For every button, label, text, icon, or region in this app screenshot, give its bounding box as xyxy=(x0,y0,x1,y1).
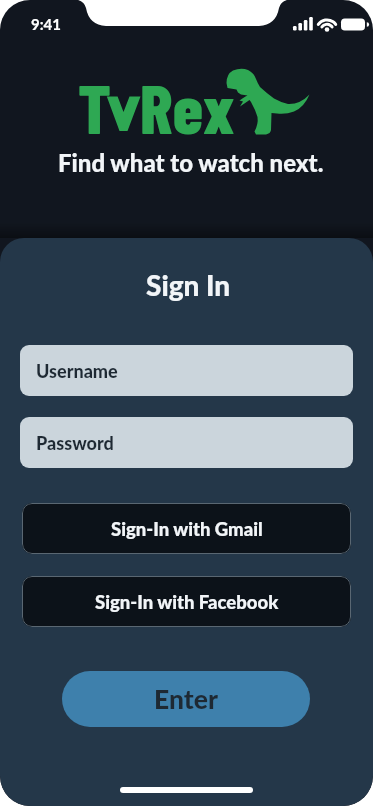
staticText: Sign In xyxy=(146,268,231,302)
button[interactable]: Sign-In with Facebook xyxy=(22,576,351,627)
staticText: Find what to watch next. xyxy=(58,148,324,176)
staticText: Rex xyxy=(140,66,235,148)
button[interactable]: Password xyxy=(20,417,353,468)
staticText: Sign-In with Facebook xyxy=(95,591,279,613)
staticText: Enter xyxy=(154,683,218,715)
button[interactable]: Enter xyxy=(62,671,310,727)
button[interactable]: Username xyxy=(20,345,353,396)
staticText: Sign-In with Gmail xyxy=(111,518,263,540)
staticText: T xyxy=(78,66,111,148)
staticText: Password xyxy=(36,432,114,454)
staticText: 9:41 xyxy=(31,15,61,33)
staticText: Username xyxy=(36,360,118,382)
button[interactable]: Sign-In with Gmail xyxy=(22,503,351,554)
